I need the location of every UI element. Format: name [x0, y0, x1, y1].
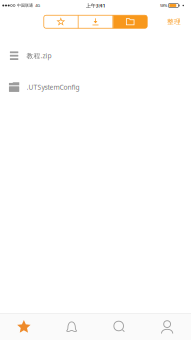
staticText: 教程.zip	[26, 51, 51, 60]
button[interactable]: 整理	[163, 15, 185, 29]
button[interactable]: Files	[113, 15, 147, 28]
staticText: 中国联通	[17, 3, 33, 8]
staticText: 上午3:41	[85, 2, 105, 9]
staticText: .UTSystemConfig	[26, 83, 79, 92]
staticText: 整理	[167, 18, 181, 26]
button[interactable]: Search	[95, 314, 143, 340]
button[interactable]: QQ	[48, 314, 96, 340]
button[interactable]: Profile	[143, 314, 191, 340]
staticText: 4G	[35, 3, 40, 8]
button[interactable]: .UTSystemConfig	[0, 71, 191, 103]
button[interactable]: Favorites	[0, 314, 48, 340]
button[interactable]: 教程.zip	[0, 40, 191, 71]
button[interactable]: Favorites	[44, 15, 78, 28]
staticText: 58%	[160, 3, 167, 8]
button[interactable]: Downloads	[78, 15, 112, 28]
